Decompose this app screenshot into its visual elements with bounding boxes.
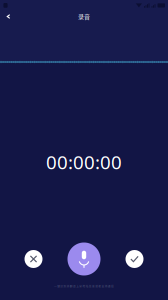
staticText: 00:00:00 — [46, 150, 122, 174]
button[interactable]: Finish recording — [114, 239, 154, 279]
button[interactable]: Cancel recording — [13, 239, 53, 279]
button[interactable]: Back — [0, 5, 17, 27]
staticText: 一键识别并翻译上家地址信息或者支持通话 — [54, 284, 114, 288]
staticText: 录音 — [78, 12, 90, 21]
button[interactable]: Record — [62, 237, 106, 281]
